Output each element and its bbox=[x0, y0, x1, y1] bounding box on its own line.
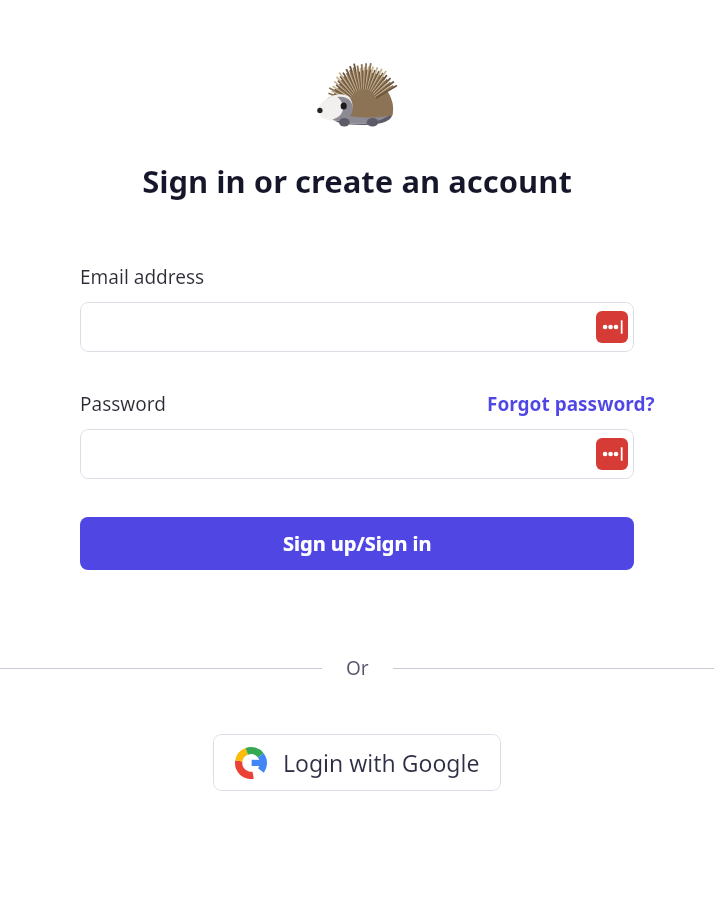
staticText: Or bbox=[346, 655, 369, 681]
button[interactable]: Fill password with LastPass bbox=[596, 311, 628, 343]
button[interactable]: Fill password with LastPass bbox=[80, 302, 634, 352]
button[interactable]: Forgot password? bbox=[487, 391, 655, 417]
button[interactable]: Sign up/Sign in bbox=[80, 517, 634, 570]
staticText: Login with Google bbox=[283, 747, 480, 778]
staticText: Password bbox=[80, 391, 166, 417]
button[interactable]: Fill password with LastPass bbox=[80, 429, 634, 479]
staticText: Sign up/Sign in bbox=[283, 530, 432, 557]
staticText: Email address bbox=[80, 264, 205, 290]
staticText: Forgot password? bbox=[487, 391, 655, 417]
button[interactable]: Login with Google bbox=[213, 734, 501, 791]
staticText: Sign in or create an account bbox=[142, 160, 572, 202]
button[interactable]: Fill password with LastPass bbox=[596, 438, 628, 470]
